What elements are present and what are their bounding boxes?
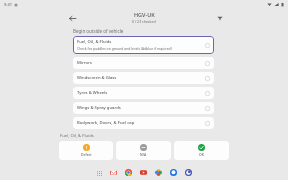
button[interactable]: Fuel, Oil, & Fluids xyxy=(73,36,214,54)
staticText: Check for puddles on ground and levels (… xyxy=(77,46,172,51)
button[interactable]: Bodywork, Doors, & Fuel cap xyxy=(73,117,214,129)
button[interactable]: Gmail xyxy=(109,168,118,177)
staticText: N/A xyxy=(140,152,147,157)
button[interactable]: Wings & Spray guards xyxy=(73,102,214,114)
button[interactable]: Messages xyxy=(169,168,178,177)
button[interactable]: YouTube xyxy=(139,168,148,177)
staticText: 0 / 23 checked xyxy=(132,19,156,24)
button[interactable]: Filter xyxy=(214,12,226,24)
staticText: Wings & Spray guards xyxy=(77,105,121,111)
button[interactable]: Back xyxy=(66,12,78,24)
button[interactable]: Chrome xyxy=(124,168,133,177)
button[interactable]: N/A xyxy=(116,141,171,160)
button[interactable]: Windscreen & Glass xyxy=(73,72,214,84)
staticText: Windscreen & Glass xyxy=(77,75,117,81)
staticText: Defect xyxy=(81,152,92,157)
staticText: Bodywork, Doors, & Fuel cap xyxy=(77,120,135,126)
staticText: Mirrors xyxy=(77,60,92,66)
button[interactable]: Tyres & Wheels xyxy=(73,87,214,99)
staticText: Tyres & Wheels xyxy=(77,90,108,96)
staticText: Fuel, Oil, & Fluids xyxy=(60,133,94,139)
staticText: 9:41 xyxy=(4,2,12,7)
staticText: Fuel, Oil, & Fluids xyxy=(77,39,112,45)
button[interactable]: OK xyxy=(174,141,229,160)
staticText: Begin outside of vehicle xyxy=(73,28,124,34)
button[interactable]: Clock xyxy=(184,168,193,177)
staticText: HGV-UK xyxy=(134,11,155,18)
staticText: OK xyxy=(199,152,204,157)
button[interactable]: Mirrors xyxy=(73,57,214,69)
button[interactable]: All apps xyxy=(95,169,103,177)
button[interactable]: Defect xyxy=(59,141,113,160)
button[interactable]: Photos xyxy=(154,168,163,177)
